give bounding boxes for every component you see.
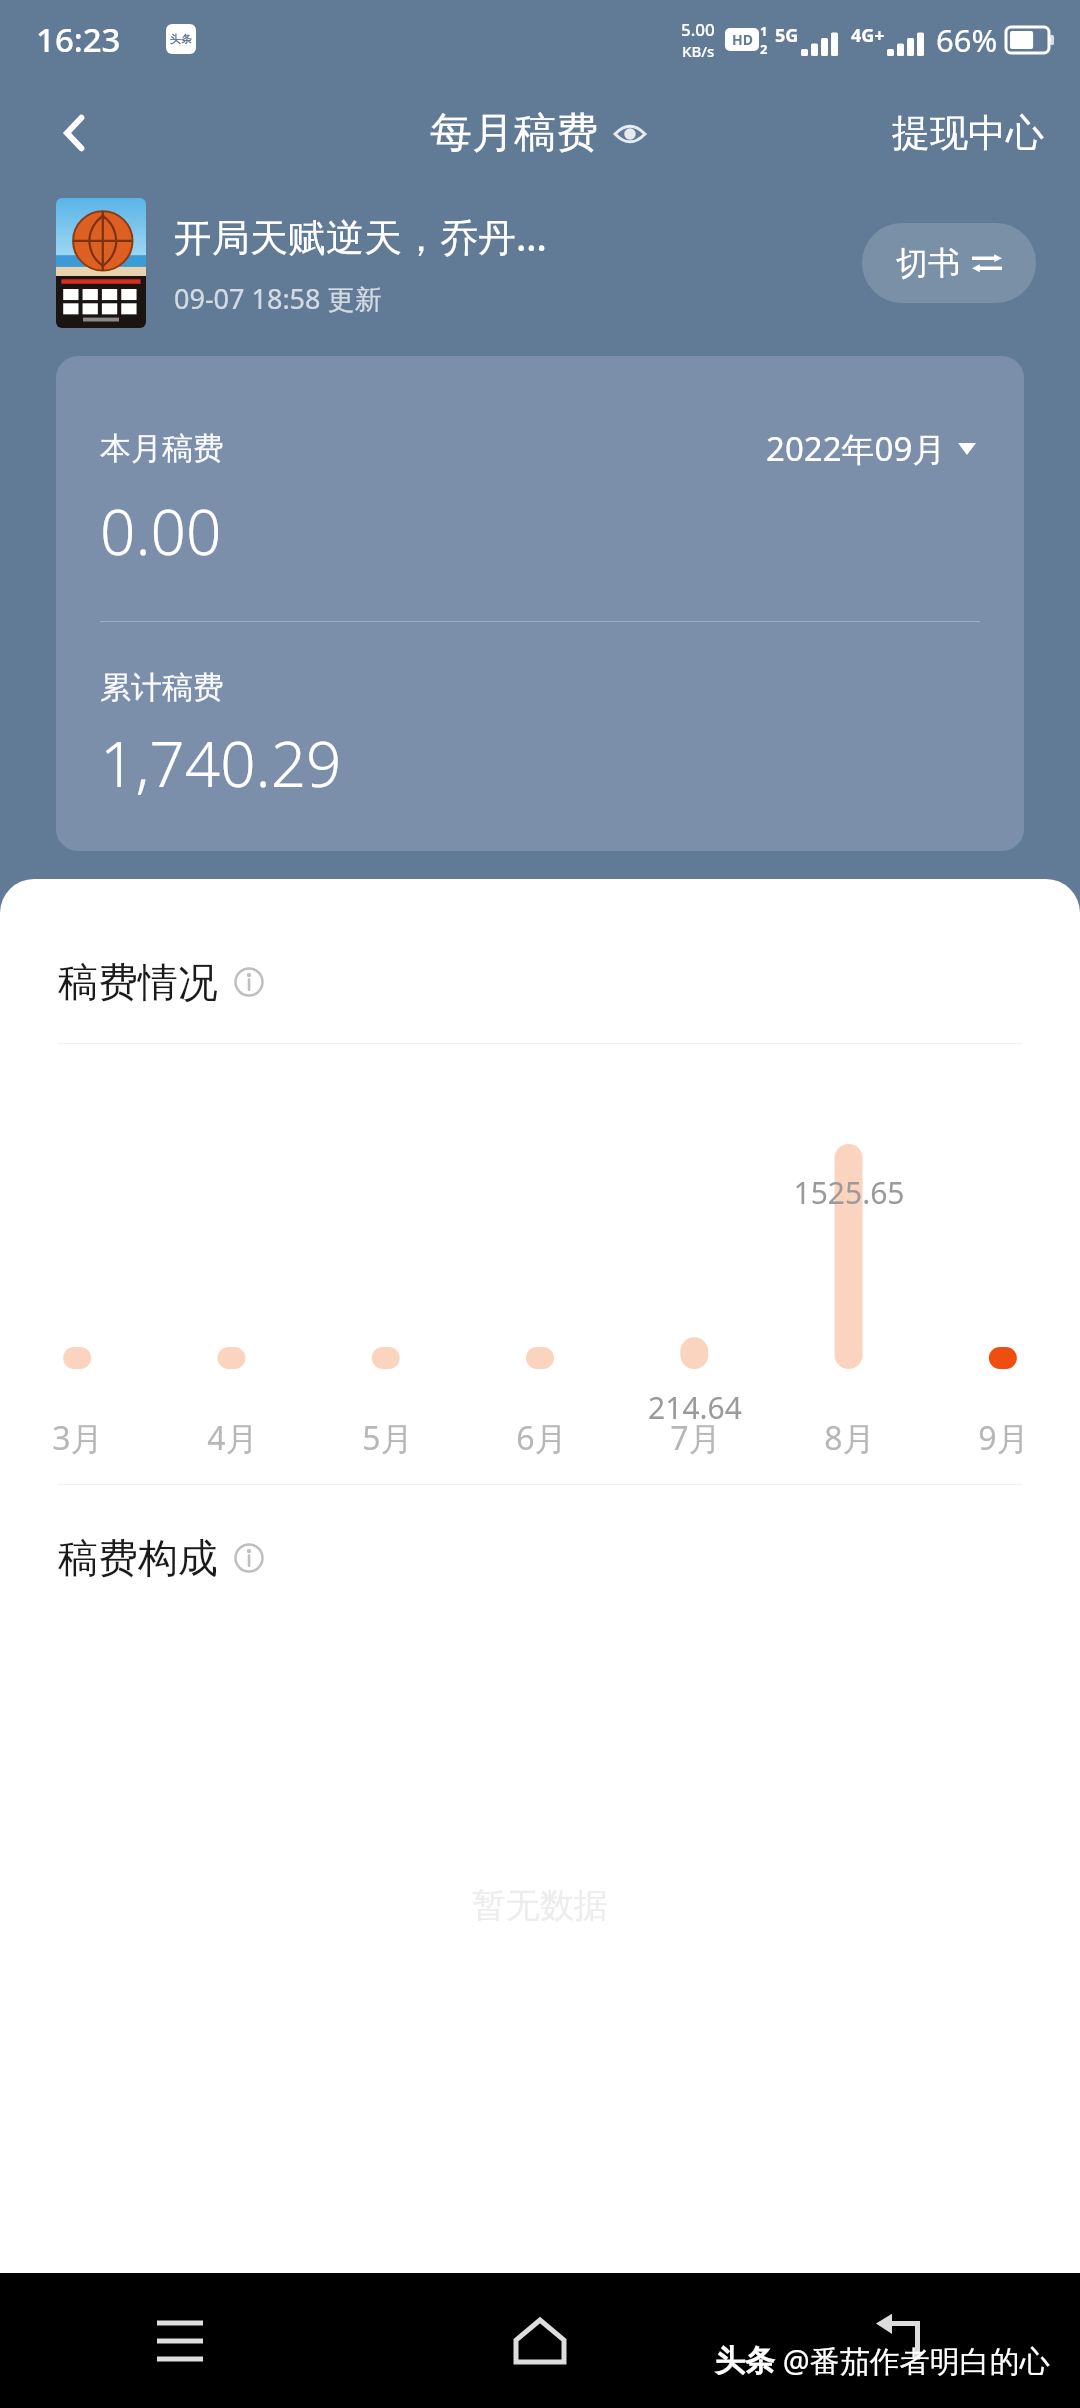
staticText: 5G: [775, 23, 799, 48]
staticText: 1: [760, 22, 768, 40]
button[interactable]: Info: [232, 965, 266, 999]
staticText: 8月: [824, 1416, 875, 1460]
button[interactable]: Back: [40, 98, 110, 168]
staticText: 1,740.29: [100, 721, 342, 805]
staticText: 本月稿费: [100, 429, 224, 468]
button[interactable]: Back: [720, 2273, 1080, 2408]
staticText: 开局天赋逆天，乔丹…: [174, 210, 547, 262]
staticText: 4G+: [851, 23, 885, 48]
staticText: 3月: [52, 1416, 103, 1460]
staticText: 5月: [362, 1416, 413, 1460]
button[interactable]: 提现中心: [882, 101, 1054, 165]
staticText: 4月: [207, 1416, 258, 1460]
staticText: KB/s: [682, 41, 715, 61]
button[interactable]: Recents: [0, 2273, 360, 2408]
staticText: 9月: [978, 1416, 1029, 1460]
button[interactable]: Home: [360, 2273, 720, 2408]
staticText: 头条: [715, 2342, 775, 2380]
staticText: 2: [760, 40, 768, 58]
button[interactable]: 切书: [862, 223, 1036, 303]
staticText: 提现中心: [892, 109, 1044, 157]
staticText: 稿费情况: [58, 957, 218, 1007]
button[interactable]: Info: [232, 1541, 266, 1575]
staticText: 6月: [516, 1416, 567, 1460]
staticText: 头条: [170, 32, 192, 46]
staticText: 1525.65: [772, 1172, 926, 1213]
staticText: 稿费构成: [58, 1533, 218, 1583]
button[interactable]: Toggle visibility: [610, 114, 650, 154]
button[interactable]: 2022年09月: [762, 422, 980, 475]
staticText: 09-07 18:58 更新: [174, 280, 382, 317]
staticText: @番茄作者明白的心: [775, 2340, 1050, 2381]
staticText: 66%: [936, 19, 998, 61]
staticText: HD: [732, 30, 753, 49]
staticText: 7月: [670, 1416, 721, 1460]
staticText: 每月稿费: [430, 107, 598, 160]
staticText: 5.00: [681, 18, 715, 41]
staticText: 214.64: [618, 1387, 772, 1428]
staticText: 0.00: [100, 489, 222, 573]
staticText: 2022年09月: [766, 426, 946, 471]
staticText: 累计稿费: [100, 668, 224, 707]
staticText: 暂无数据: [472, 1884, 608, 1927]
staticText: 16:23: [36, 17, 121, 62]
staticText: 切书: [896, 243, 960, 283]
